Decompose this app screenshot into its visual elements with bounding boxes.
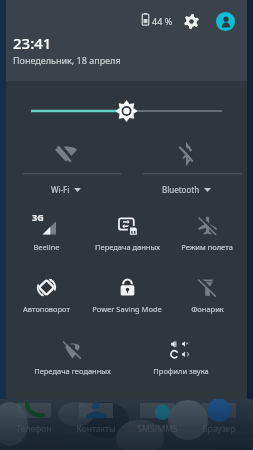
staticText: SMS/MMS [137,423,178,435]
button[interactable]: Контакты [68,403,124,435]
button[interactable]: Brightness [6,81,247,141]
staticText: Телефон [16,423,52,435]
staticText: Понедельник, 18 апреля [13,54,121,66]
button[interactable]: Settings [180,10,203,33]
staticText: Режим полета [181,242,233,252]
staticText: 23:41 [13,33,52,53]
staticText: 3G [32,211,44,223]
staticText: Bluetooth [162,184,200,195]
staticText: Wi-Fi [51,184,70,195]
staticText: Передача данных [95,242,160,252]
staticText: Beeline [33,242,60,252]
staticText: Передача геоданных [34,366,111,376]
staticText: Браузер [202,423,236,435]
staticText: Профили звука [153,366,209,376]
button[interactable]: Профили звука [126,329,235,391]
button[interactable]: Wi-Fi [6,141,126,205]
button[interactable]: SMS/MMS [129,403,185,435]
button[interactable]: Power Saving Mode [87,267,167,329]
staticText: 44 % [152,15,173,27]
staticText: Фонарик [191,304,224,314]
button[interactable]: Передача геоданных [18,329,126,391]
button[interactable]: Фонарик [167,267,247,329]
button[interactable]: Bluetooth [126,141,247,205]
button[interactable]: Режим полета [167,205,247,267]
button[interactable]: Браузер [191,403,247,435]
button[interactable]: User profile [216,12,235,31]
staticText: Power Saving Mode [92,304,162,314]
button[interactable]: Передача данных [87,205,167,267]
button[interactable]: Автоповорот [6,267,87,329]
staticText: Автоповорот [23,304,70,314]
button[interactable]: 3G [6,205,87,267]
button[interactable]: Телефон [6,403,62,435]
staticText: Контакты [76,423,116,435]
